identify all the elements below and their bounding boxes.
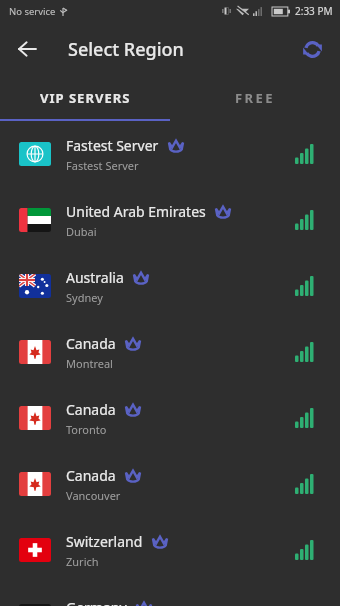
staticText: Montreal	[66, 356, 113, 371]
staticText: Fastest Server	[66, 158, 139, 173]
staticText: 2:33 PM	[295, 4, 333, 18]
staticText: United Arab Emirates	[66, 202, 206, 221]
button[interactable]: Canada	[0, 385, 340, 451]
staticText: Canada	[66, 466, 116, 485]
staticText: Toronto	[66, 422, 107, 437]
button[interactable]: Switzerland	[0, 517, 340, 583]
staticText: Germany	[66, 598, 127, 606]
staticText: Select Region	[68, 37, 184, 62]
button[interactable]: VIP SERVERS	[0, 76, 170, 119]
staticText: Zurich	[66, 554, 99, 569]
button[interactable]: United Arab Emirates	[0, 187, 340, 253]
staticText: Australia	[66, 268, 124, 287]
staticText: VIP SERVERS	[40, 89, 131, 107]
staticText: No service	[9, 5, 56, 18]
button[interactable]: Australia	[0, 253, 340, 319]
staticText: Canada	[66, 334, 116, 353]
button[interactable]: Fastest Server	[0, 121, 340, 187]
button[interactable]: Back	[7, 29, 47, 69]
staticText: Sydney	[66, 290, 103, 305]
staticText: Canada	[66, 400, 116, 419]
button[interactable]: FREE	[170, 76, 340, 119]
staticText: Fastest Server	[66, 136, 159, 155]
staticText: Dubai	[66, 224, 97, 239]
button[interactable]: Canada	[0, 319, 340, 385]
button[interactable]: Canada	[0, 451, 340, 517]
button[interactable]: Refresh	[293, 30, 331, 68]
staticText: FREE	[235, 89, 275, 107]
staticText: Switzerland	[66, 532, 143, 551]
button[interactable]: Germany	[0, 583, 340, 606]
staticText: Vancouver	[66, 488, 121, 503]
